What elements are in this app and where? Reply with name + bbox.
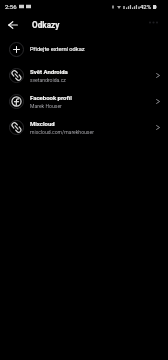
staticText: Facebook profil [30, 94, 72, 101]
staticText: Svět Androida [30, 68, 68, 75]
staticText: Odkazy [32, 20, 60, 30]
staticText: svetandroida.cz [30, 77, 66, 83]
button[interactable]: Svět Androida [0, 62, 168, 88]
button[interactable]: More options [143, 14, 163, 30]
staticText: mixcloud.com/marekhouser [30, 129, 94, 135]
button[interactable]: Facebook profil [0, 88, 168, 114]
button[interactable]: Back [0, 13, 26, 36]
staticText: 42% [140, 3, 152, 10]
staticText: Přidejte externí odkaz [30, 46, 85, 53]
staticText: Mixcloud [30, 120, 55, 127]
staticText: Marek Houser [30, 103, 62, 109]
button[interactable]: Přidejte externí odkaz [0, 36, 168, 62]
staticText: 2:56 [5, 3, 17, 10]
button[interactable]: Mixcloud [0, 114, 168, 140]
